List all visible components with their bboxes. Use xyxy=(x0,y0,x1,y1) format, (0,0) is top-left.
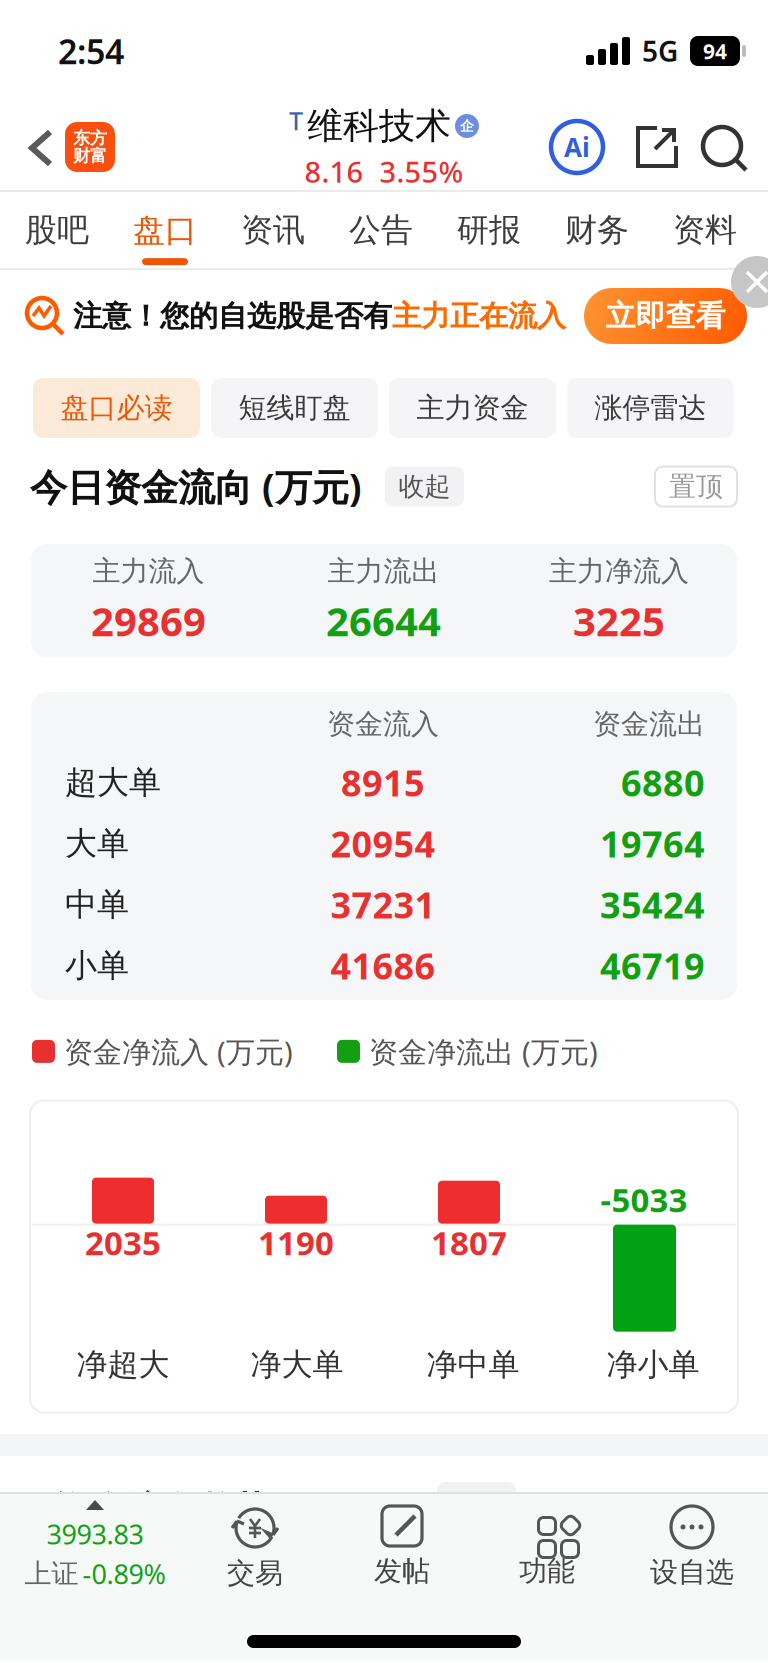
staticText: 财富 xyxy=(73,145,107,166)
staticText: 资金净流出 (万元) xyxy=(369,1032,598,1071)
staticText: 维科技术 xyxy=(307,104,451,148)
button[interactable]: 盘口 xyxy=(133,203,197,257)
staticText: 净小单 xyxy=(606,1346,699,1384)
staticText: 盘口 xyxy=(133,211,197,250)
staticText: 小单 xyxy=(65,946,129,985)
staticText: 功能 xyxy=(519,1554,575,1588)
staticText: 置顶 xyxy=(669,470,723,503)
staticText: 超大单 xyxy=(65,763,161,802)
staticText: 8915 xyxy=(341,759,425,806)
button[interactable]: 发帖 xyxy=(374,1506,430,1588)
staticText: 涨停雷达 xyxy=(594,391,706,425)
button[interactable]: 交易 xyxy=(227,1506,283,1590)
staticText: 上证 xyxy=(24,1557,78,1590)
staticText: 财务 xyxy=(565,210,629,250)
staticText: 资料 xyxy=(673,210,737,250)
button[interactable]: 注意！您的自选股是否有 xyxy=(0,270,768,362)
staticText: 2035 xyxy=(85,1221,161,1264)
staticText: 8.16 3.55% xyxy=(304,152,463,191)
button[interactable] xyxy=(731,256,768,308)
staticText: 盘口必读 xyxy=(60,391,172,425)
staticText: 公告 xyxy=(349,210,413,250)
button[interactable]: 涨停雷达 xyxy=(567,378,734,438)
button[interactable]: Ai xyxy=(551,121,603,173)
staticText: 3225 xyxy=(573,594,665,647)
staticText: 主力流出 xyxy=(327,554,439,588)
staticText: 设自选 xyxy=(650,1555,734,1589)
staticText: 19764 xyxy=(600,820,705,867)
staticText: 资金流向趋势 (万元) xyxy=(55,1485,376,1533)
staticText: 今日资金流向 (万元) xyxy=(30,462,362,511)
staticText: 中单 xyxy=(65,885,129,924)
staticText: 资金流入 xyxy=(327,707,439,741)
staticText: 净中单 xyxy=(426,1346,519,1384)
staticText: 股吧 xyxy=(25,210,89,250)
staticText: 交易 xyxy=(227,1556,283,1590)
staticText: 46719 xyxy=(600,942,705,989)
button[interactable]: 资讯 xyxy=(241,210,305,250)
staticText: 94 xyxy=(703,37,727,65)
staticText: T xyxy=(289,104,303,137)
staticText: 净超大 xyxy=(76,1346,169,1384)
staticText: 20954 xyxy=(330,820,435,867)
staticText: 立即查看 xyxy=(605,298,725,334)
staticText: 大单 xyxy=(65,824,129,863)
staticText: 资金流出 xyxy=(593,707,705,741)
staticText: -0.89% xyxy=(82,1556,165,1592)
staticText: -5033 xyxy=(600,1178,687,1221)
staticText: 41686 xyxy=(330,942,435,989)
button[interactable]: 盘口必读 xyxy=(33,378,200,438)
staticText: 29869 xyxy=(91,594,206,647)
button[interactable] xyxy=(701,125,749,173)
staticText: 1807 xyxy=(431,1221,507,1264)
button[interactable]: 股吧 xyxy=(25,210,89,250)
staticText: 26644 xyxy=(326,594,441,647)
staticText: 6880 xyxy=(621,759,705,806)
button[interactable]: 资料 xyxy=(673,210,737,250)
button[interactable]: 短线盯盘 xyxy=(211,378,378,438)
staticText: 资金净流入 (万元) xyxy=(64,1032,293,1071)
staticText: 短线盯盘 xyxy=(238,391,350,425)
staticText: 主力净流入 xyxy=(549,554,689,588)
staticText: 3993.83 xyxy=(46,1516,143,1552)
button[interactable]: 财务 xyxy=(565,210,629,250)
button[interactable] xyxy=(633,125,679,171)
staticText: 发帖 xyxy=(374,1554,430,1588)
button[interactable]: 研报 xyxy=(457,210,521,250)
staticText: 东方 xyxy=(73,128,107,148)
button[interactable]: 置顶 xyxy=(655,467,737,507)
staticText: 主力正在流入 xyxy=(392,298,566,334)
staticText: 收起 xyxy=(398,471,450,502)
staticText: 企 xyxy=(460,117,474,135)
button[interactable]: 设自选 xyxy=(650,1506,734,1589)
staticText: 资讯 xyxy=(241,210,305,250)
button[interactable]: 主力资金 xyxy=(389,378,556,438)
staticText: 注意！您的自选股是否有 xyxy=(73,298,392,334)
button[interactable]: 功能 xyxy=(519,1506,575,1588)
button[interactable]: 东方 xyxy=(65,122,115,172)
button[interactable]: 收起 xyxy=(385,467,464,507)
staticText: 2:54 xyxy=(58,28,124,74)
button[interactable]: 3993.83 xyxy=(0,1500,190,1592)
staticText: Ai xyxy=(564,130,590,164)
staticText: 37231 xyxy=(330,881,435,928)
staticText: 主力流入 xyxy=(92,554,204,588)
staticText: 35424 xyxy=(600,881,705,928)
staticText: 净大单 xyxy=(250,1346,343,1384)
staticText: 主力资金 xyxy=(416,391,528,425)
button[interactable]: 公告 xyxy=(349,210,413,250)
staticText: 研报 xyxy=(457,210,521,250)
staticText: 5G xyxy=(642,32,678,70)
button[interactable] xyxy=(29,129,53,167)
staticText: 1190 xyxy=(258,1221,334,1264)
